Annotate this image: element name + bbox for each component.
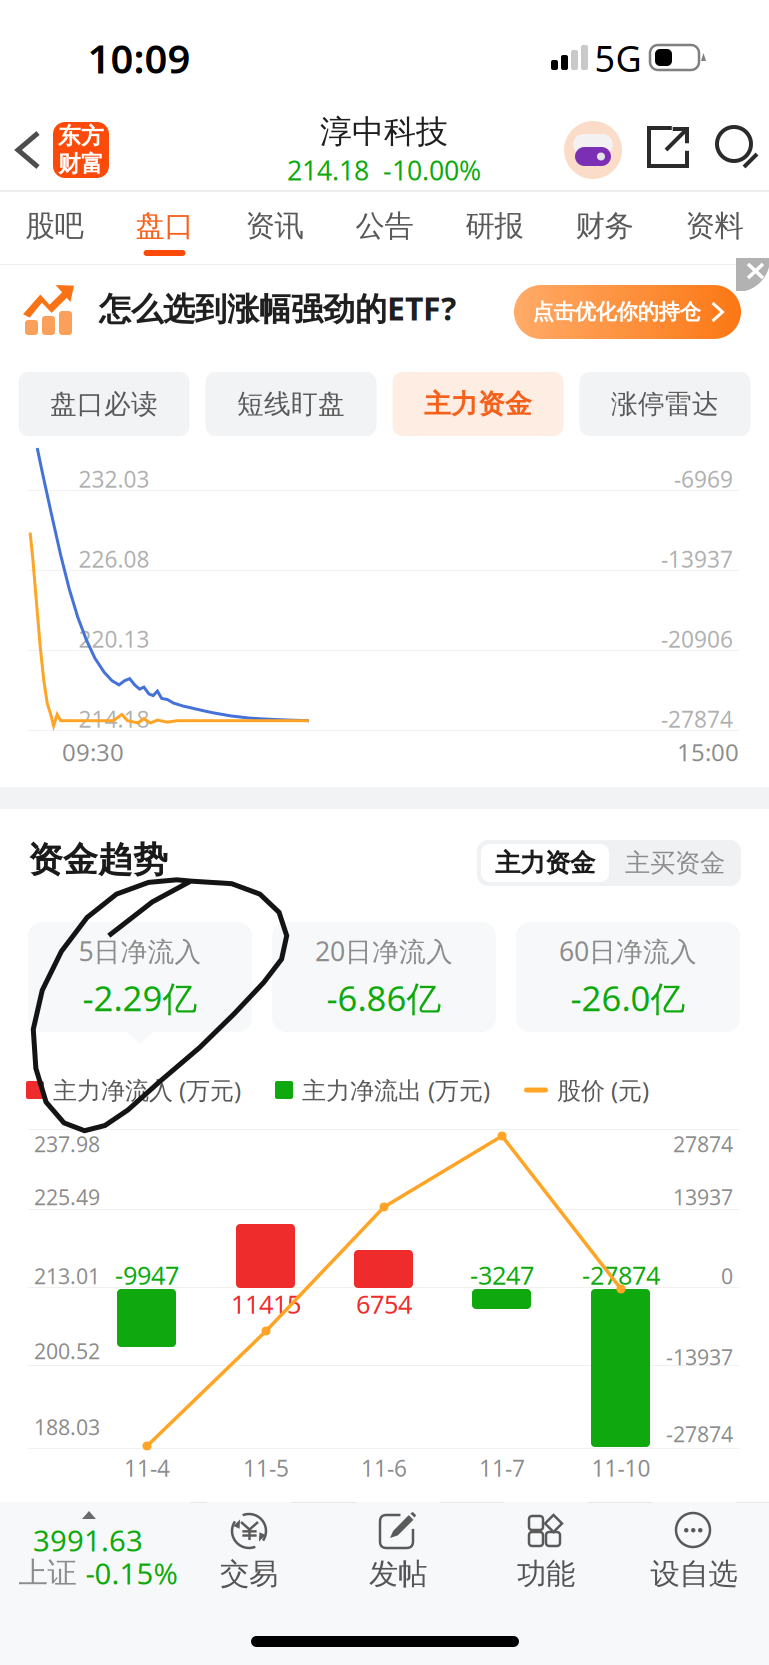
staticText: -26.0亿 <box>570 975 685 1021</box>
staticText: 东方 <box>58 122 104 150</box>
staticText: 资讯 <box>245 208 303 244</box>
staticText: 盘口 <box>135 208 193 244</box>
staticText: 11-5 <box>243 1453 289 1483</box>
button[interactable]: 涨停雷达 <box>579 372 750 436</box>
button[interactable]: East Money <box>53 122 109 178</box>
staticText: 226.08 <box>78 544 149 574</box>
button[interactable]: 财务 <box>549 198 659 264</box>
staticText: 交易 <box>220 1556 278 1592</box>
button[interactable]: 盘口 <box>109 198 219 264</box>
staticText: 研报 <box>465 208 523 244</box>
button[interactable]: AI assistant <box>564 121 622 179</box>
staticText: 盘口必读 <box>50 388 158 420</box>
staticText: 上证 <box>18 1555 76 1591</box>
staticText: 60日净流入 <box>559 933 697 969</box>
button[interactable]: 资料 <box>659 198 769 264</box>
staticText: 214.18 <box>78 704 149 734</box>
staticText: 09:30 <box>62 736 124 768</box>
staticText: 15:00 <box>677 736 739 768</box>
staticText: 3991.63 <box>33 1520 143 1559</box>
staticText: 11-10 <box>591 1453 650 1483</box>
button[interactable]: 主力资金 <box>481 844 609 882</box>
staticText: 27874 <box>673 1130 733 1158</box>
button[interactable]: 短线盯盘 <box>205 372 376 436</box>
button[interactable]: 主买资金 <box>611 844 739 882</box>
button[interactable]: 公告 <box>329 198 439 264</box>
staticText: 5G <box>594 34 641 82</box>
staticText: 设自选 <box>650 1556 737 1592</box>
button[interactable]: 股吧 <box>0 198 109 264</box>
staticText: 主力净流入 (万元) <box>53 1074 241 1106</box>
button[interactable]: 功能 <box>504 1502 588 1612</box>
button[interactable]: 盘口必读 <box>18 372 189 436</box>
staticText: -20906 <box>661 624 733 654</box>
staticText: 13937 <box>673 1183 733 1211</box>
staticText: 11415 <box>231 1287 301 1321</box>
button[interactable]: 设自选 <box>652 1502 736 1612</box>
staticText: -9947 <box>115 1258 179 1292</box>
staticText: 财富 <box>58 150 104 178</box>
staticText: -13937 <box>666 1343 733 1371</box>
staticText: 主力资金 <box>495 847 595 878</box>
staticText: 公告 <box>355 208 413 244</box>
button[interactable]: 点击优化你的持仓 <box>514 285 741 339</box>
staticText: -6969 <box>674 464 733 494</box>
staticText: -27874 <box>582 1258 660 1292</box>
staticText: 10:09 <box>87 31 190 84</box>
staticText: 213.01 <box>34 1262 100 1290</box>
staticText: 资金趋势 <box>28 839 168 881</box>
button[interactable]: 发帖 <box>356 1502 440 1612</box>
staticText: -3247 <box>470 1258 534 1292</box>
button[interactable]: Back <box>6 116 52 184</box>
staticText: 资料 <box>685 208 743 244</box>
staticText: 5日净流入 <box>78 933 201 969</box>
button[interactable]: Share <box>645 122 693 176</box>
staticText: 20日净流入 <box>315 933 453 969</box>
staticText: 11-6 <box>361 1453 407 1483</box>
staticText: 11-7 <box>479 1453 525 1483</box>
staticText: 188.03 <box>34 1413 100 1441</box>
staticText: 主力资金 <box>424 388 532 420</box>
button[interactable]: 交易 <box>207 1502 291 1612</box>
button[interactable]: Search <box>712 122 760 176</box>
staticText: -27874 <box>666 1420 733 1448</box>
button[interactable]: Close ad <box>736 258 769 291</box>
staticText: 主买资金 <box>625 847 725 878</box>
staticText: -13937 <box>661 544 733 574</box>
staticText: 点击优化你的持仓 <box>532 299 700 325</box>
staticText: 淳中科技 <box>320 112 448 151</box>
button[interactable]: 主力资金 <box>392 372 563 436</box>
staticText: 主力净流出 (万元) <box>302 1074 490 1106</box>
staticText: 11-4 <box>124 1453 170 1483</box>
button[interactable]: 3991.63 <box>0 1502 190 1612</box>
staticText: 涨停雷达 <box>611 388 719 420</box>
staticText: -2.29亿 <box>82 975 197 1021</box>
staticText: 财务 <box>575 208 633 244</box>
staticText: 214.18 -10.00% <box>287 152 481 188</box>
staticText: -0.15% <box>85 1553 177 1592</box>
staticText: 股吧 <box>25 208 83 244</box>
staticText: -6.86亿 <box>326 975 441 1021</box>
staticText: 怎么选到涨幅强劲的ETF? <box>99 287 456 329</box>
staticText: -27874 <box>661 704 733 734</box>
staticText: 股价 (元) <box>557 1074 649 1106</box>
staticText: 225.49 <box>34 1183 100 1211</box>
staticText: 232.03 <box>78 464 149 494</box>
staticText: 220.13 <box>78 624 149 654</box>
button[interactable]: 资讯 <box>219 198 329 264</box>
staticText: 200.52 <box>34 1337 100 1365</box>
staticText: 短线盯盘 <box>237 388 345 420</box>
staticText: 0 <box>721 1262 733 1290</box>
staticText: 237.98 <box>34 1130 100 1158</box>
staticText: 功能 <box>517 1556 575 1592</box>
staticText: 6754 <box>356 1287 412 1321</box>
staticText: 发帖 <box>369 1556 427 1592</box>
button[interactable]: 研报 <box>439 198 549 264</box>
